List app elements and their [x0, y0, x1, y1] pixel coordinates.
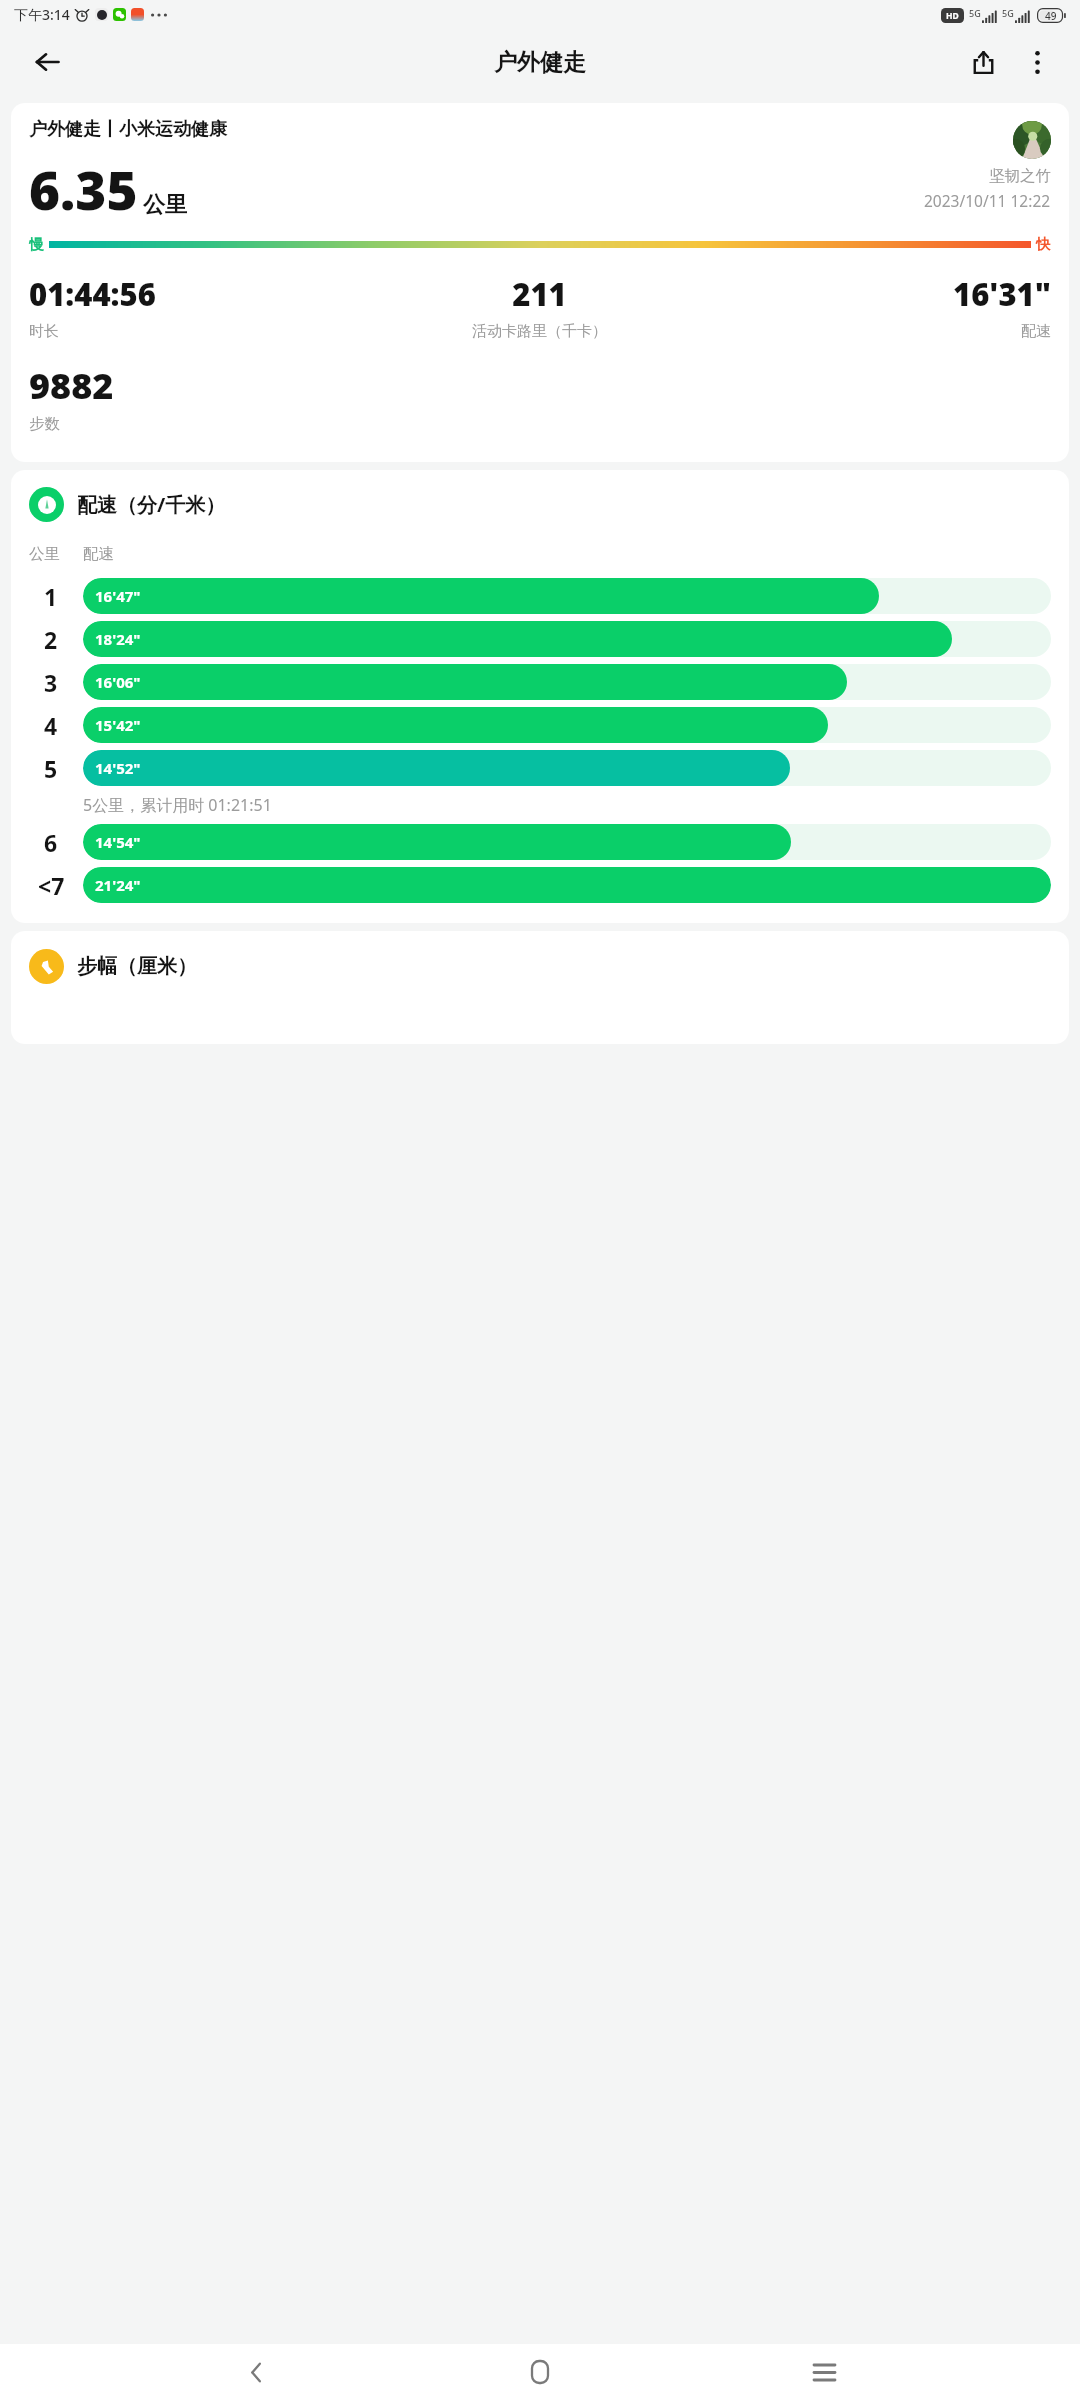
staticText: 户外健走丨小米运动健康 — [29, 118, 227, 141]
staticText: 步幅（厘米） — [77, 954, 197, 979]
staticText: <7 — [38, 870, 65, 901]
staticText: 5公里，累计用时 01:21:51 — [83, 794, 272, 816]
button[interactable]: 分享 — [956, 35, 1010, 89]
staticText: 3 — [44, 667, 58, 698]
button[interactable]: 返回 — [228, 2344, 284, 2400]
staticText: 6 — [44, 827, 58, 858]
staticText: 时长 — [29, 322, 369, 341]
staticText: 16'31" — [710, 273, 1051, 315]
staticText: 户外健走 — [494, 48, 586, 77]
staticText: 14'52" — [95, 758, 141, 778]
button[interactable]: 3 — [29, 664, 1051, 700]
button[interactable]: 更多选项 — [1010, 35, 1064, 89]
staticText: 14'54" — [95, 832, 141, 852]
staticText: 5G — [1002, 7, 1014, 19]
staticText: 4 — [44, 710, 58, 741]
staticText: 21'24" — [95, 875, 141, 895]
button[interactable]: 返回 — [20, 35, 74, 89]
staticText: 坚韧之竹 — [989, 166, 1051, 186]
button[interactable]: 配速（分/千米） — [11, 470, 1069, 923]
button[interactable]: 5 — [29, 750, 1051, 786]
staticText: 2 — [44, 624, 58, 655]
staticText: 配速（分/千米） — [77, 491, 226, 518]
staticText: 211 — [369, 273, 710, 315]
button[interactable]: 4 — [29, 707, 1051, 743]
button[interactable]: <7 — [29, 867, 1051, 903]
staticText: 16'47" — [95, 586, 141, 606]
button[interactable]: 主页 — [512, 2344, 568, 2400]
staticText: HD — [946, 10, 959, 22]
staticText: 18'24" — [95, 629, 141, 649]
staticText: 01:44:56 — [29, 273, 369, 315]
staticText: 活动卡路里（千卡） — [369, 322, 710, 341]
button[interactable]: 户外健走丨小米运动健康 — [11, 103, 1069, 462]
staticText: 16'06" — [95, 672, 141, 692]
staticText: 下午3:14 — [14, 5, 70, 24]
staticText: 15'42" — [95, 715, 141, 735]
staticText: 公里 — [29, 544, 60, 564]
staticText: 49 — [1045, 9, 1057, 23]
staticText: 2023/10/11 12:22 — [924, 190, 1051, 211]
button[interactable]: 1 — [29, 578, 1051, 614]
staticText: 5G — [969, 7, 981, 19]
button[interactable]: 步幅（厘米） — [11, 931, 1069, 1044]
staticText: 配速 — [83, 544, 114, 564]
staticText: 配速 — [710, 322, 1051, 341]
staticText: 1 — [44, 581, 58, 612]
staticText: 6.35 — [29, 153, 138, 225]
staticText: 步数 — [29, 414, 60, 434]
button[interactable]: 最近任务 — [796, 2344, 852, 2400]
staticText: 快 — [1036, 235, 1051, 253]
staticText: 慢 — [29, 235, 44, 253]
button[interactable]: 2 — [29, 621, 1051, 657]
staticText: 公里 — [143, 191, 187, 219]
staticText: 9882 — [29, 361, 114, 410]
staticText: 5 — [44, 753, 58, 784]
button[interactable]: 6 — [29, 824, 1051, 860]
